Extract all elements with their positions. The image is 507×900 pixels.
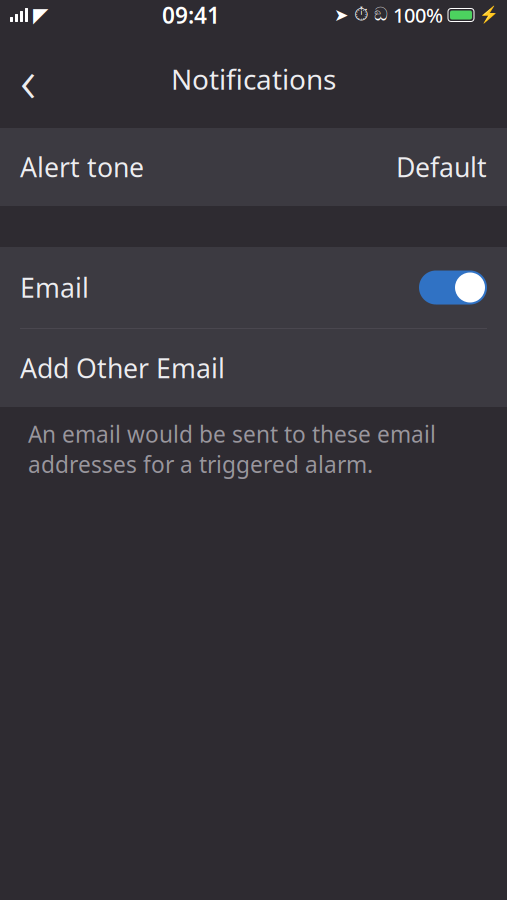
staticText: ➤	[334, 5, 349, 25]
button[interactable]: Alert tone	[0, 128, 507, 206]
staticText: ⚡	[479, 6, 499, 24]
staticText: 100%	[393, 2, 443, 28]
staticText: Notifications	[171, 60, 336, 98]
staticText: Email	[20, 270, 89, 305]
staticText: Add Other Email	[20, 350, 225, 386]
staticText: An email would be sent to these email ad…	[28, 419, 436, 479]
staticText: Default	[396, 149, 487, 185]
staticText: Alert tone	[20, 149, 144, 185]
button[interactable]: Email	[0, 247, 507, 328]
staticText: ‹	[20, 38, 36, 120]
staticText: ◤	[33, 4, 48, 26]
staticText: ඞ	[374, 6, 388, 24]
button[interactable]: Back	[0, 51, 56, 107]
button[interactable]: Add Other Email	[0, 329, 507, 407]
staticText: 09:41	[162, 0, 220, 30]
staticText: ⏱	[354, 6, 369, 24]
